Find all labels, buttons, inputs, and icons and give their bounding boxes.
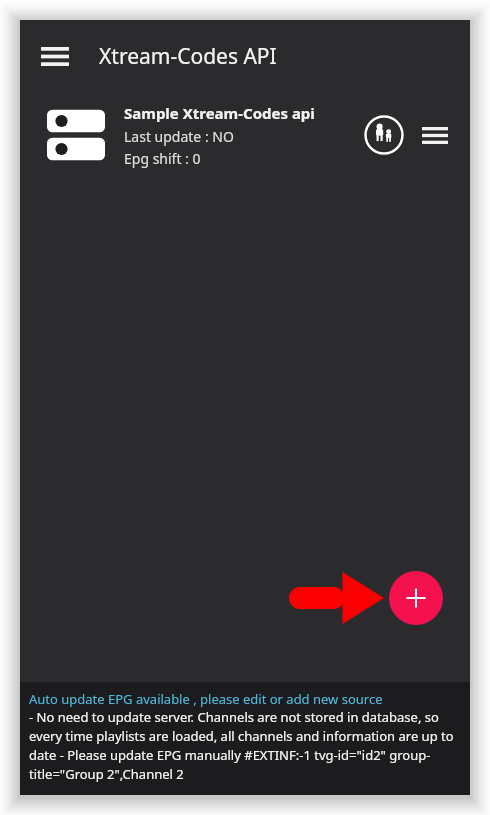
button[interactable]: Add playlist xyxy=(389,571,443,625)
staticText: Last update : NO xyxy=(124,127,234,146)
staticText: Sample Xtream-Codes api xyxy=(124,103,315,123)
button[interactable]: Auto update EPG available , please edit … xyxy=(29,690,383,708)
button[interactable]: Sample Xtream-Codes api xyxy=(20,92,470,178)
button[interactable]: Open navigation menu xyxy=(31,32,79,80)
button[interactable]: Parental control xyxy=(362,113,406,157)
staticText: Epg shift : 0 xyxy=(124,149,201,168)
button[interactable]: Playlist options xyxy=(414,114,456,156)
staticText: Xtream-Codes API xyxy=(99,42,277,71)
staticText: - No need to update server. Channels are… xyxy=(29,708,461,783)
